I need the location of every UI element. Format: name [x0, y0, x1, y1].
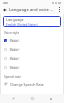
button[interactable]: Recent apps	[46, 94, 55, 103]
button[interactable]: Back	[9, 94, 18, 103]
button[interactable]: Voice 4	[1, 63, 63, 72]
button[interactable]: Home	[28, 94, 37, 103]
button[interactable]: More options	[55, 5, 64, 14]
button[interactable]: Language	[3, 16, 61, 27]
staticText: Voice 3	[10, 57, 19, 60]
button[interactable]: Voice 3	[1, 54, 63, 63]
button[interactable]: Change Speech Rate	[1, 80, 63, 88]
staticText: Language and voice style	[9, 7, 55, 13]
button[interactable]: Voice 2	[1, 45, 63, 54]
staticText: Language	[6, 17, 24, 22]
staticText: Voice style	[4, 31, 20, 35]
staticText: Voice 4	[10, 66, 19, 69]
staticText: Voice 2	[10, 48, 19, 51]
staticText: Speech rate	[4, 75, 21, 79]
staticText: Voice 1	[10, 39, 19, 42]
button[interactable]: Voice 1	[1, 36, 63, 45]
staticText: Change Speech Rate	[10, 82, 44, 87]
button[interactable]: Back	[0, 5, 9, 14]
staticText: English (United States)	[6, 23, 38, 27]
